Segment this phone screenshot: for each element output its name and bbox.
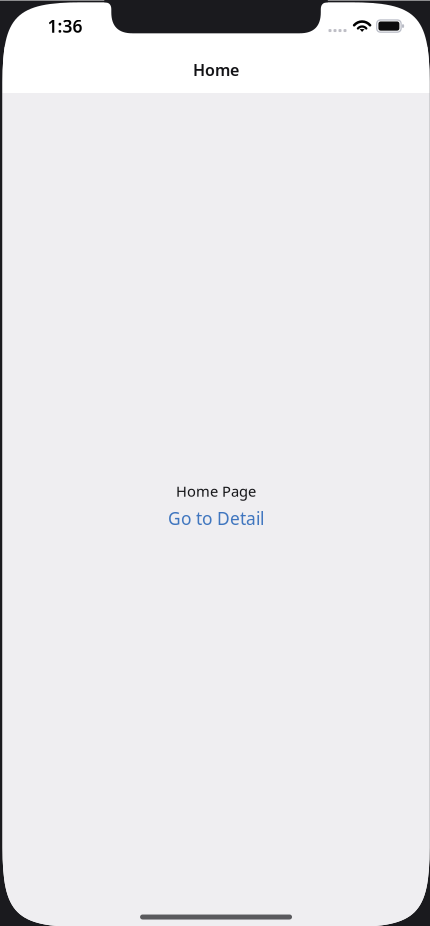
- staticText: Home: [193, 59, 239, 80]
- staticText: Go to Detail: [168, 507, 264, 530]
- staticText: 1:36: [47, 14, 82, 37]
- button[interactable]: Go to Detail: [168, 507, 264, 530]
- staticText: Home Page: [176, 481, 256, 501]
